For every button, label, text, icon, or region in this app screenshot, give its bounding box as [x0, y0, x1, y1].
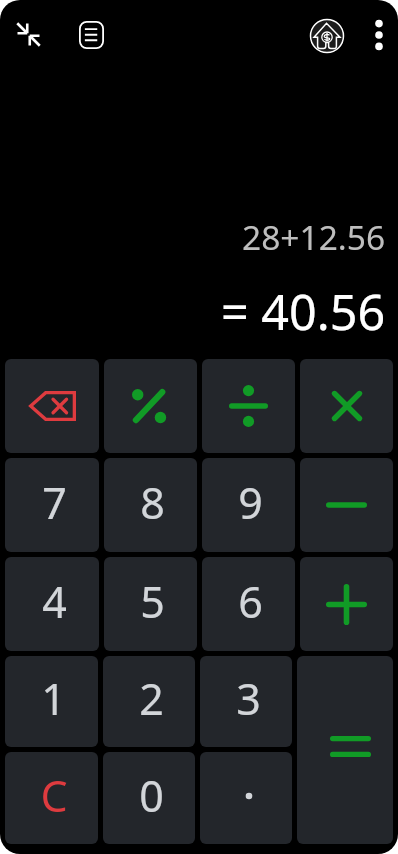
button[interactable]: 7	[5, 458, 99, 552]
button[interactable]: 1	[5, 656, 98, 747]
staticText: 7	[42, 473, 67, 532]
button[interactable]	[5, 359, 99, 453]
staticText: 1	[41, 669, 66, 728]
button[interactable]: C	[5, 752, 98, 844]
staticText: 6	[238, 572, 263, 631]
button[interactable]	[202, 359, 295, 453]
button[interactable]	[300, 458, 393, 552]
button[interactable]: 3	[200, 656, 292, 747]
button[interactable]	[104, 359, 197, 453]
button[interactable]: 8	[104, 458, 197, 552]
staticText: 5	[140, 572, 165, 631]
staticText: 2	[139, 669, 164, 728]
staticText: 0	[139, 766, 164, 825]
button[interactable]: History	[70, 14, 112, 56]
button[interactable]: 2	[103, 656, 195, 747]
staticText: 28+12.56	[242, 214, 386, 260]
button[interactable]	[297, 656, 393, 844]
button[interactable]: 6	[202, 557, 295, 651]
staticText: 4	[42, 572, 67, 631]
staticText: = 40.56	[221, 278, 386, 344]
button[interactable]: 5	[104, 557, 197, 651]
button[interactable]	[300, 557, 393, 651]
button[interactable]: Loan calculator	[305, 14, 349, 58]
button[interactable]	[300, 359, 393, 453]
staticText: 3	[236, 669, 261, 728]
button[interactable]: 4	[5, 557, 99, 651]
staticText: C	[40, 766, 68, 825]
button[interactable]: 0	[103, 752, 195, 844]
button[interactable]: More options	[358, 14, 398, 56]
staticText: 9	[238, 473, 263, 532]
button[interactable]: Collapse	[7, 13, 50, 56]
button[interactable]: 9	[202, 458, 295, 552]
staticText: 8	[140, 473, 165, 532]
button[interactable]	[200, 752, 292, 844]
